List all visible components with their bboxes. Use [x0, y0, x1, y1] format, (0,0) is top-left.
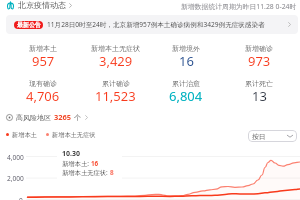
staticText: 新增本土无症状: [62, 168, 110, 177]
staticText: 4,706 [26, 87, 60, 105]
staticText: 新增本土无症状 [52, 131, 96, 139]
staticText: 新增本土: [62, 159, 91, 168]
staticText: 10.30 [62, 149, 80, 159]
staticText: 973 [248, 52, 271, 70]
button[interactable]: 累计治愈 [150, 79, 222, 106]
staticText: 16 [91, 159, 99, 168]
staticText: 4,000 [7, 153, 24, 162]
button[interactable]: 累计确诊 [79, 79, 151, 106]
staticText: 新增数据统计周期为昨日11.28 0-24时 [181, 2, 297, 11]
staticText: 6,804 [169, 87, 203, 105]
button[interactable]: 累计死亡 [223, 79, 295, 106]
staticText: 新增确诊 [245, 44, 273, 53]
staticText: 2,000 [7, 174, 24, 183]
staticText: 16 [179, 52, 194, 70]
button[interactable]: 新增确诊 [223, 44, 295, 71]
button[interactable]: 新增本土无症状 [79, 44, 151, 71]
staticText: 按日 [252, 132, 266, 141]
staticText: 3265 [54, 112, 72, 122]
staticText: 11月28日0时至24时，北京新增957例本土确诊病例和3429例无症状感染者 [47, 20, 265, 29]
button[interactable]: 最新公告 [6, 15, 298, 34]
button[interactable]: 按日 [248, 130, 297, 142]
staticText: 累计确诊 [102, 79, 130, 88]
staticText: 高风险地区 [16, 113, 51, 122]
staticText: 现有确诊 [29, 79, 57, 88]
staticText: 新增境外 [172, 44, 200, 53]
staticText: 13 [252, 87, 267, 105]
staticText: 累计治愈 [172, 79, 200, 88]
staticText: 0 [19, 196, 23, 200]
button[interactable]: 北京疫情动态 [6, 0, 73, 11]
staticText: 新增本土 [29, 44, 57, 53]
staticText: 11,523 [95, 87, 136, 105]
staticText: 957 [32, 52, 55, 70]
button[interactable]: 高风险地区 [6, 111, 89, 123]
staticText: 新增本土无症状 [91, 44, 140, 53]
staticText: 3,429 [99, 52, 133, 70]
staticText: 北京疫情动态 [18, 0, 66, 10]
staticText: 8 [110, 168, 114, 177]
staticText: 累计死亡 [245, 79, 273, 88]
staticText: 最新公告 [17, 21, 41, 29]
button[interactable]: 新增境外 [150, 44, 222, 71]
button[interactable]: 新增本土 [7, 44, 79, 71]
button[interactable]: 现有确诊 [7, 79, 79, 106]
staticText: 个 [74, 113, 81, 122]
staticText: 新增本土 [12, 131, 37, 139]
